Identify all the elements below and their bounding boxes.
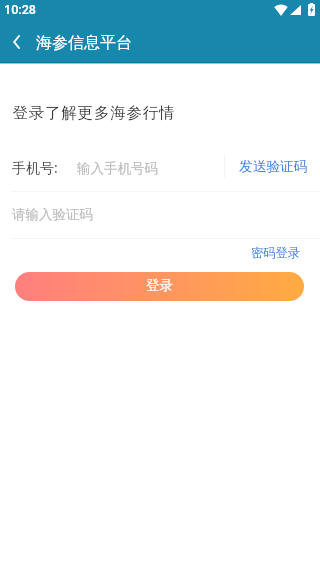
button[interactable]: 登录: [15, 272, 304, 301]
staticText: 10:28: [4, 2, 36, 17]
staticText: 请输入验证码: [12, 206, 93, 223]
staticText: 登录: [146, 277, 173, 294]
staticText: 输入手机号码: [77, 160, 158, 177]
button[interactable]: 密码登录: [243, 239, 309, 265]
button[interactable]: 发送验证码: [232, 150, 314, 182]
staticText: 发送验证码: [239, 158, 308, 175]
staticText: 登录了解更多海参行情: [12, 103, 175, 123]
button[interactable]: Back: [1, 26, 31, 60]
staticText: 海参信息平台: [36, 33, 132, 53]
staticText: 密码登录: [251, 245, 301, 260]
staticText: 手机号:: [12, 158, 58, 177]
